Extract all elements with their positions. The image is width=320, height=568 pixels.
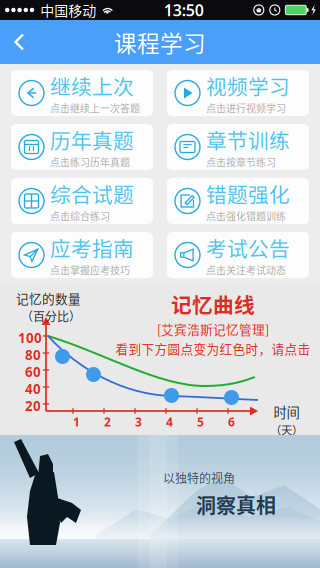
- staticText: 5: [197, 414, 204, 430]
- staticText: 错题强化: [206, 179, 290, 209]
- staticText: 60: [25, 363, 41, 381]
- staticText: 6: [228, 414, 235, 430]
- staticText: 点击强化错题训练: [206, 209, 286, 223]
- staticText: 点击练习历年真题: [50, 155, 130, 169]
- staticText: 以独特的视角: [163, 469, 235, 486]
- staticText: 课程学习: [114, 26, 206, 58]
- button[interactable]: 错题强化: [167, 178, 309, 224]
- staticText: 13:50: [164, 0, 204, 21]
- staticText: 点击继续上一次答题: [50, 101, 140, 115]
- staticText: 时间: [273, 402, 299, 421]
- staticText: 1: [73, 414, 80, 430]
- staticText: 点击进行视频学习: [206, 101, 286, 115]
- staticText: 3: [135, 414, 142, 430]
- staticText: 视频学习: [206, 71, 290, 101]
- staticText: 点击关注考试动态: [206, 263, 286, 277]
- button[interactable]: 视频学习: [167, 70, 309, 116]
- staticText: 80: [25, 346, 41, 364]
- staticText: 100: [18, 329, 42, 347]
- staticText: 综合试题: [50, 179, 134, 209]
- button[interactable]: 章节训练: [167, 124, 309, 170]
- staticText: 考试公告: [206, 233, 290, 263]
- button[interactable]: 综合试题: [11, 178, 153, 224]
- staticText: 4: [166, 414, 173, 430]
- button[interactable]: 历年真题: [11, 124, 153, 170]
- button[interactable]: Review day 6: [224, 390, 239, 405]
- staticText: 中国移动: [37, 0, 96, 20]
- staticText: 历年真题: [50, 125, 134, 155]
- button[interactable]: Back: [0, 20, 44, 63]
- staticText: 应考指南: [50, 233, 134, 263]
- button[interactable]: 考试公告: [167, 232, 309, 278]
- staticText: 章节训练: [206, 125, 290, 155]
- staticText: 20: [25, 397, 41, 415]
- button[interactable]: Review day 2: [86, 367, 101, 382]
- staticText: （天）: [270, 421, 303, 438]
- staticText: 点击掌握应考技巧: [50, 263, 130, 277]
- staticText: 2: [104, 414, 111, 430]
- button[interactable]: 继续上次: [11, 70, 153, 116]
- staticText: 点击按章节练习: [206, 155, 276, 169]
- staticText: 看到下方圆点变为红色时，请点击: [115, 339, 310, 358]
- staticText: 记忆曲线: [171, 289, 255, 319]
- staticText: 洞察真相: [196, 490, 276, 519]
- staticText: 点击综合练习: [50, 209, 110, 223]
- staticText: （百分比）: [21, 307, 81, 325]
- staticText: [艾宾浩斯记忆管理]: [157, 320, 269, 338]
- staticText: 40: [25, 380, 41, 398]
- staticText: 记忆的数量: [16, 289, 81, 307]
- button[interactable]: Review day 4: [164, 388, 179, 403]
- staticText: 继续上次: [50, 71, 134, 101]
- button[interactable]: Review day 1: [55, 349, 70, 364]
- button[interactable]: 应考指南: [11, 232, 153, 278]
